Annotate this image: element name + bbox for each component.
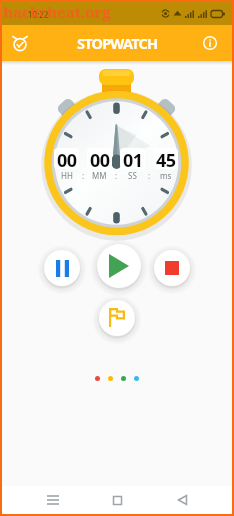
- staticText: hackcheat.org: [3, 2, 111, 22]
- staticText: 45: [156, 148, 176, 169]
- staticText: SS: [128, 170, 137, 181]
- button[interactable]: Home: [103, 486, 131, 514]
- staticText: 00: [90, 148, 110, 169]
- button[interactable]: Pause: [44, 250, 80, 286]
- button[interactable]: Lap: [99, 300, 135, 336]
- staticText: 01: [123, 148, 143, 169]
- staticText: 10:22: [28, 9, 49, 20]
- staticText: MM: [92, 170, 107, 181]
- staticText: ms: [160, 170, 172, 181]
- staticText: STOPWATCH: [77, 33, 158, 53]
- staticText: HH: [61, 170, 73, 181]
- button[interactable]: Back: [168, 486, 196, 514]
- button[interactable]: Info: [196, 29, 224, 57]
- staticText: :: [148, 170, 151, 181]
- button[interactable]: Alarm: [5, 28, 35, 58]
- button[interactable]: Start: [97, 244, 141, 288]
- staticText: :: [115, 170, 118, 181]
- staticText: :: [82, 170, 85, 181]
- staticText: 00: [57, 148, 77, 169]
- button[interactable]: Stop: [154, 250, 190, 286]
- button[interactable]: Recents: [39, 486, 67, 514]
